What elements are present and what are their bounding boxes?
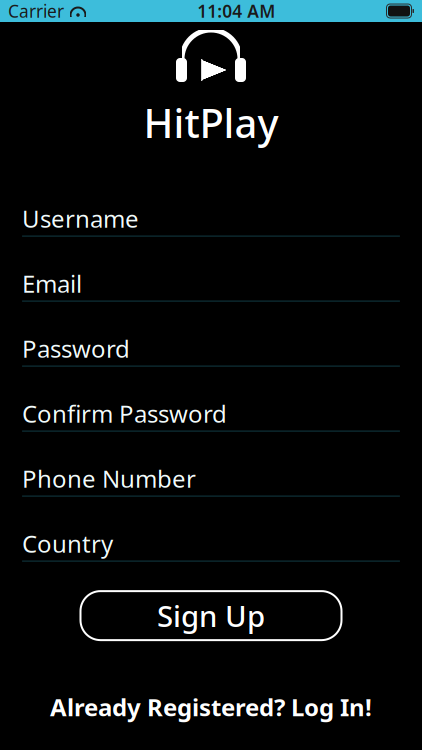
staticText: Country [22, 527, 113, 559]
staticText: Password [22, 332, 130, 364]
staticText: Confirm Password [22, 397, 227, 429]
staticText: HitPlay [143, 96, 278, 149]
staticText: Email [22, 267, 82, 299]
staticText: Phone Number [22, 462, 196, 494]
staticText: Sign Up [157, 596, 265, 635]
button[interactable]: Already Registered? Log In! [0, 692, 422, 722]
staticText: Carrier [8, 0, 64, 22]
staticText: 11:04 AM [197, 0, 275, 22]
button[interactable]: Sign Up [80, 591, 341, 640]
staticText: Username [22, 202, 139, 234]
staticText: Already Registered? Log In! [50, 691, 372, 723]
